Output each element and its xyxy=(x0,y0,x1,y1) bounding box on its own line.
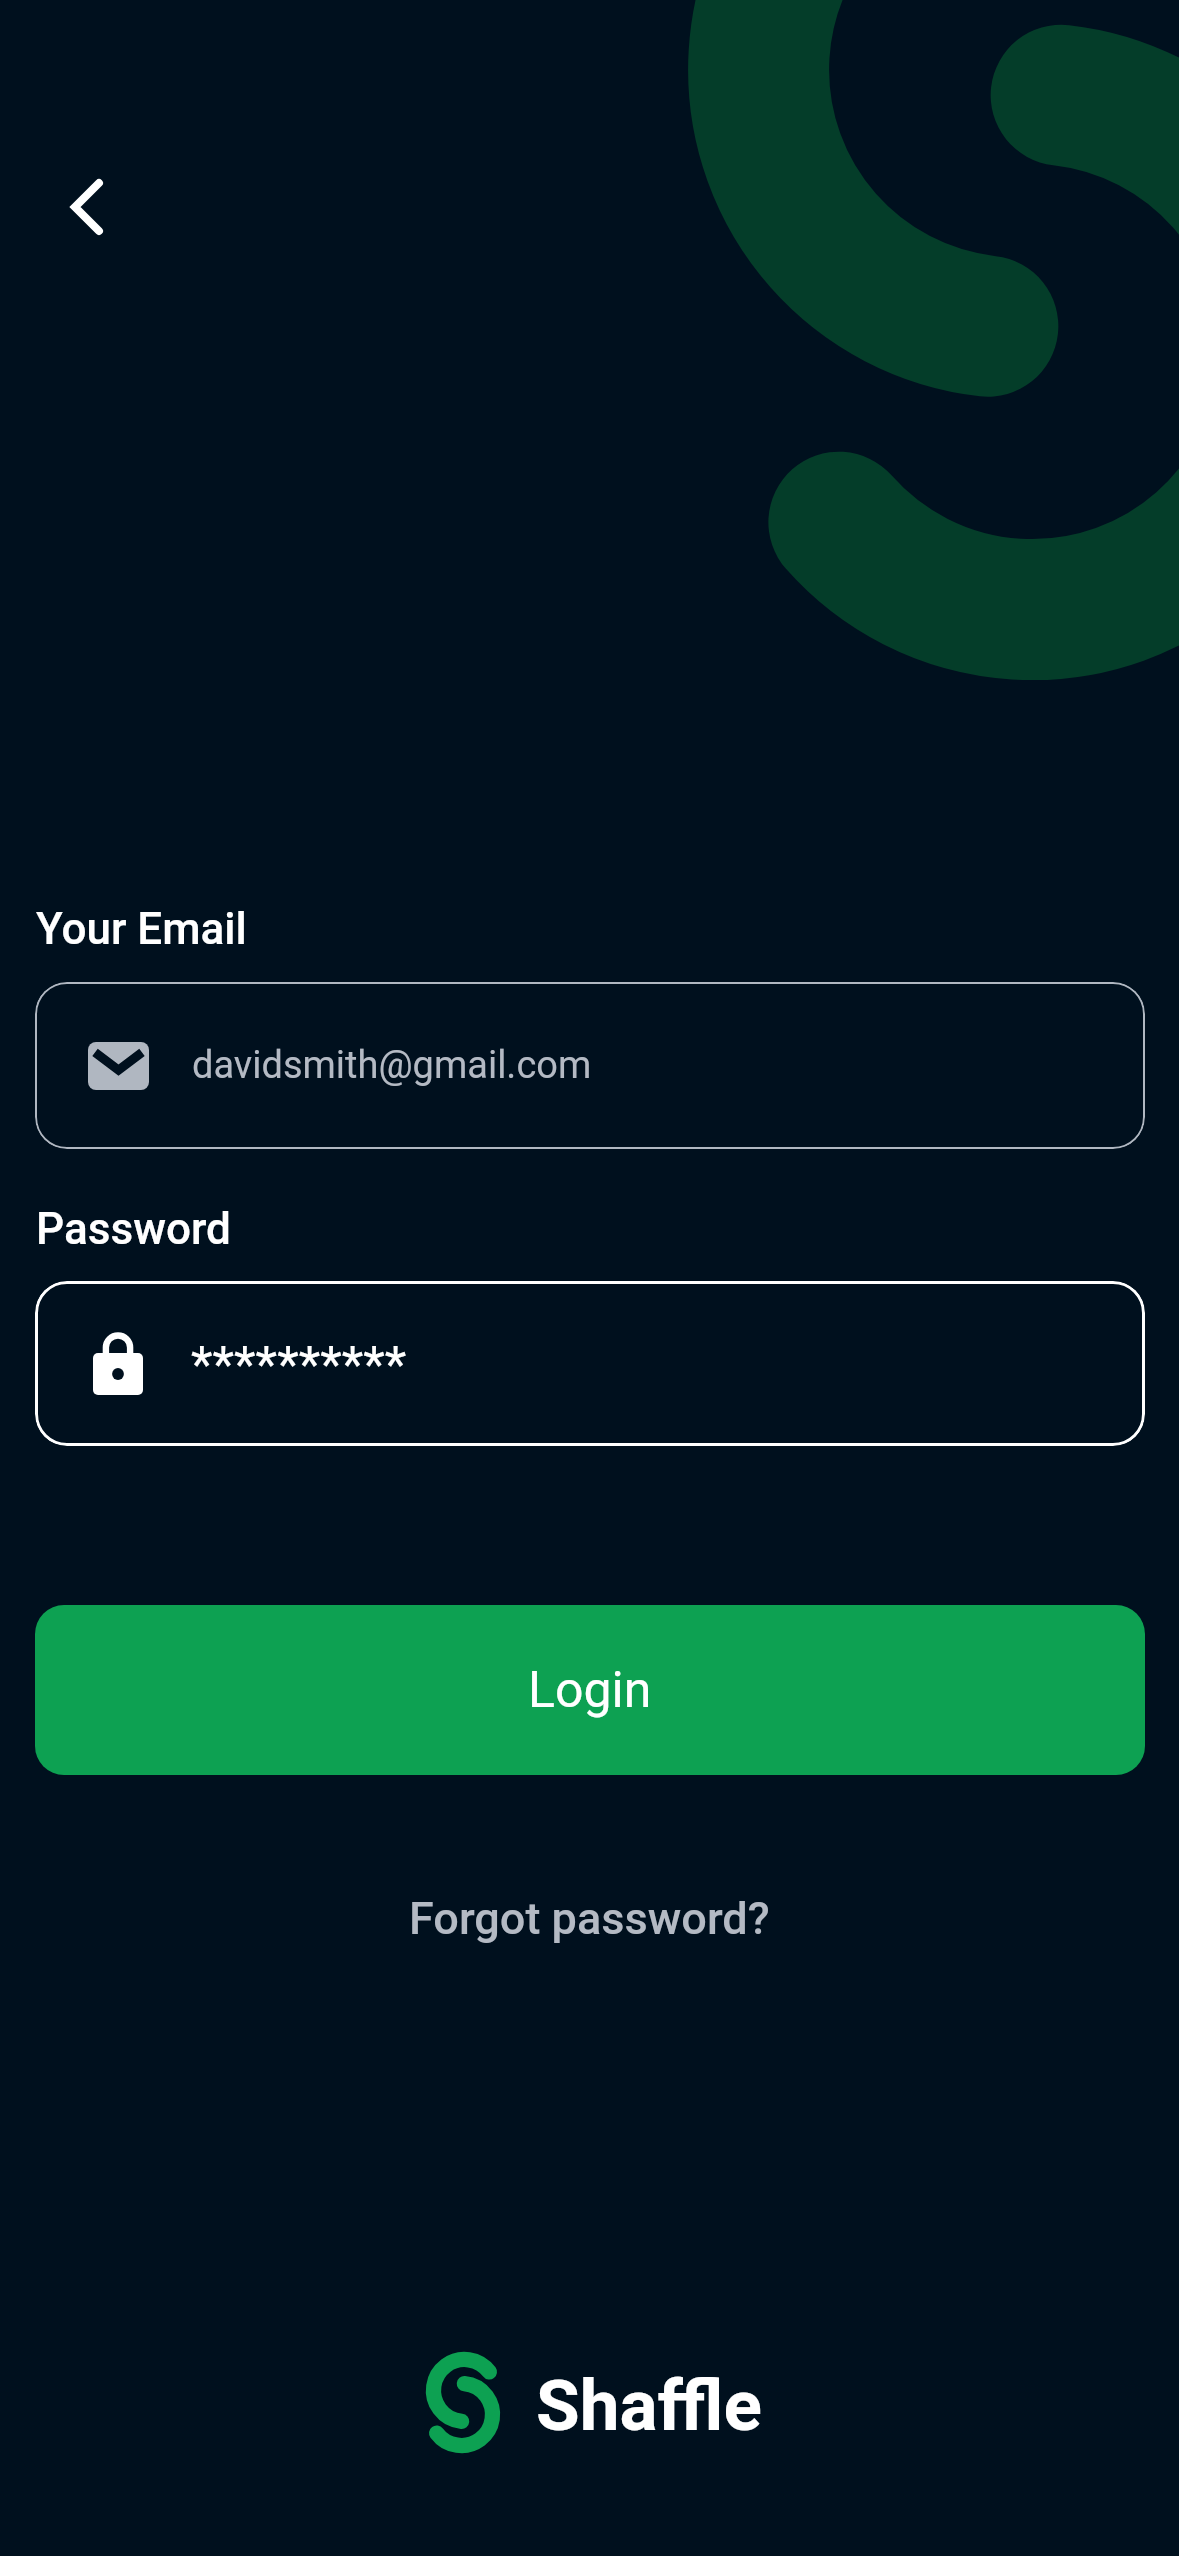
staticText: davidsmith@gmail.com xyxy=(192,1043,592,1088)
staticText: Forgot password? xyxy=(409,1892,770,1945)
button[interactable]: Back xyxy=(39,159,135,255)
staticText: Your Email xyxy=(36,903,247,955)
staticText: Password xyxy=(36,1203,231,1255)
button[interactable]: ********** xyxy=(35,1281,1145,1446)
staticText: Shaffle xyxy=(536,2364,762,2447)
staticText: ********** xyxy=(191,1336,407,1395)
button[interactable]: Forgot password? xyxy=(393,1882,786,1955)
button[interactable]: Login xyxy=(35,1605,1145,1775)
button[interactable]: davidsmith@gmail.com xyxy=(35,982,1145,1149)
staticText: Login xyxy=(528,1661,652,1720)
